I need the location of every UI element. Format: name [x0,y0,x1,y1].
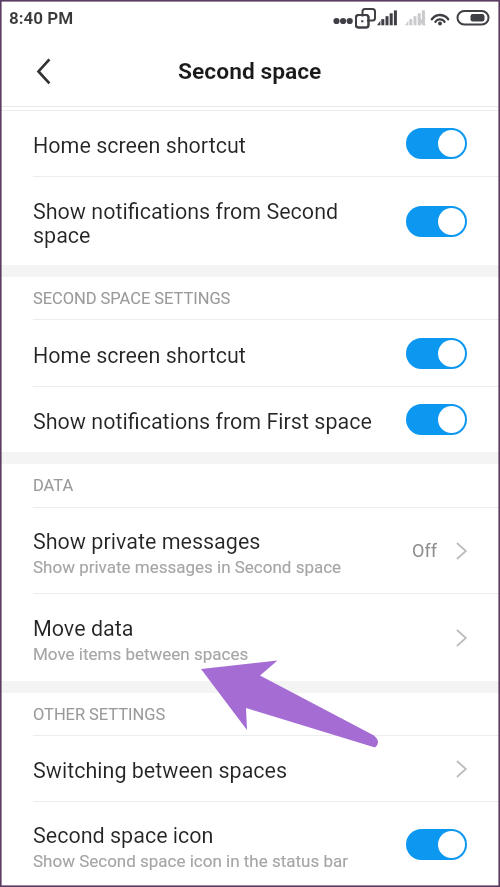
button[interactable]: Second space icon [0,802,500,887]
staticText: Second space [178,58,322,85]
button[interactable]: Toggle setting [406,829,467,860]
staticText: Home screen shortcut [33,133,246,158]
staticText: 8:40 PM [9,8,74,28]
button[interactable]: Toggle setting [406,128,467,159]
button[interactable]: Show notifications from Second space [0,177,500,265]
staticText: Move items between spaces [33,644,249,664]
button[interactable]: Show private messages [0,508,500,593]
button[interactable]: Home screen shortcut [0,111,500,176]
staticText: Off [412,540,437,561]
button[interactable]: Switching between spaces [0,736,500,801]
button[interactable]: Toggle setting [406,338,467,369]
button[interactable]: Toggle setting [406,206,467,237]
staticText: OTHER SETTINGS [33,705,166,724]
staticText: Show private messages [33,529,261,554]
staticText: Switching between spaces [33,758,288,783]
staticText: Show notifications from First space [33,409,372,434]
staticText: Show notifications from Second space [33,199,339,248]
button[interactable]: Move data [0,594,500,681]
button[interactable]: Back [0,36,88,106]
button[interactable]: Toggle setting [406,404,467,435]
staticText: SECOND SPACE SETTINGS [33,289,231,308]
staticText: Move data [33,616,134,641]
button[interactable]: Show notifications from First space [0,387,500,452]
staticText: Show private messages in Second space [33,557,342,577]
button[interactable]: Home screen shortcut [0,320,500,386]
staticText: Second space icon [33,823,214,848]
staticText: Home screen shortcut [33,343,246,368]
staticText: Show Second space icon in the status bar [33,851,349,871]
staticText: DATA [33,476,74,495]
